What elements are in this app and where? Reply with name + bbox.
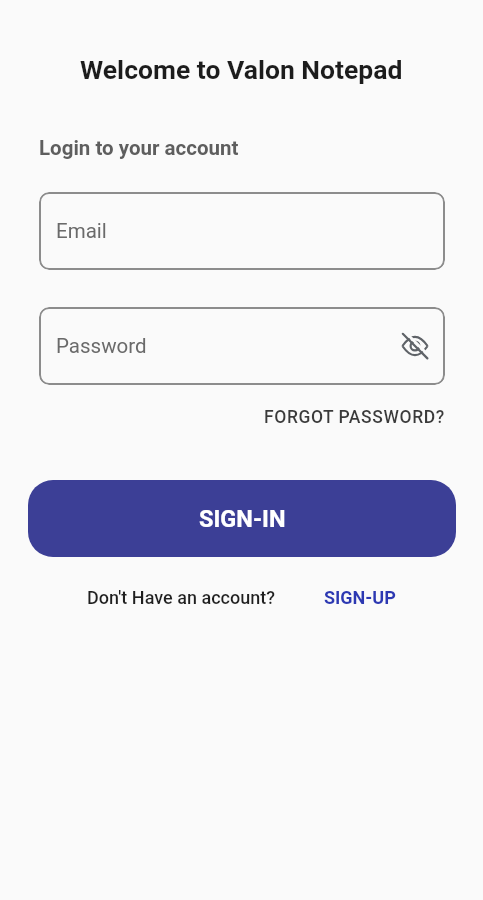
staticText: Login to your account <box>39 136 239 160</box>
staticText: FORGOT PASSWORD? <box>264 407 445 428</box>
staticText: Don't Have an account? <box>87 587 276 608</box>
staticText: Welcome to Valon Notepad <box>80 54 403 85</box>
staticText: SIGN-IN <box>199 505 286 533</box>
button[interactable]: SIGN-IN <box>28 480 456 557</box>
button[interactable]: Email <box>39 192 445 270</box>
staticText: Email <box>56 219 107 243</box>
button[interactable]: Password <box>39 307 445 385</box>
staticText: SIGN-UP <box>324 587 396 608</box>
button[interactable]: FORGOT PASSWORD? <box>264 407 445 428</box>
button[interactable]: SIGN-UP <box>324 587 396 608</box>
button[interactable] <box>400 331 430 361</box>
staticText: Password <box>56 334 147 358</box>
